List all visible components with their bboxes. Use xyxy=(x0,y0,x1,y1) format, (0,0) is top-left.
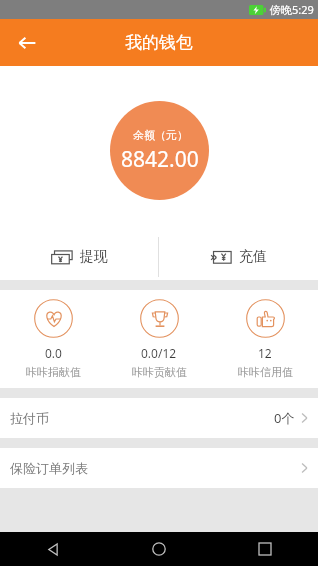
staticText: 0.0/12 xyxy=(141,345,177,361)
button[interactable]: 12 xyxy=(212,290,318,388)
staticText: 0个 xyxy=(274,409,295,427)
staticText: 12 xyxy=(258,345,272,361)
button[interactable]: 0.0/12 xyxy=(106,290,212,388)
button[interactable]: Back xyxy=(0,532,106,566)
staticText: 0.0 xyxy=(45,345,62,361)
staticText: 咔咔信用值 xyxy=(238,365,293,379)
staticText: 提现 xyxy=(80,248,108,266)
staticText: 咔咔捐献值 xyxy=(26,365,81,379)
staticText: 我的钱包 xyxy=(125,32,193,53)
button[interactable]: 0.0 xyxy=(0,290,106,388)
staticText: 傍晚5:29 xyxy=(270,2,314,17)
button[interactable]: Home xyxy=(106,532,212,566)
button[interactable]: 充值 xyxy=(159,234,318,280)
staticText: 拉付币 xyxy=(10,410,49,426)
button[interactable]: 余额（元） xyxy=(110,101,209,200)
staticText: 8842.00 xyxy=(121,145,199,174)
button[interactable]: Recents xyxy=(212,532,318,566)
button[interactable]: Back xyxy=(10,26,44,60)
staticText: 保险订单列表 xyxy=(10,460,88,476)
staticText: 充值 xyxy=(239,248,267,266)
button[interactable]: 保险订单列表 xyxy=(0,448,318,488)
button[interactable]: 提现 xyxy=(0,234,158,280)
staticText: 咔咔贡献值 xyxy=(132,365,187,379)
staticText: 余额（元） xyxy=(133,128,188,142)
button[interactable]: 拉付币 xyxy=(0,398,318,438)
